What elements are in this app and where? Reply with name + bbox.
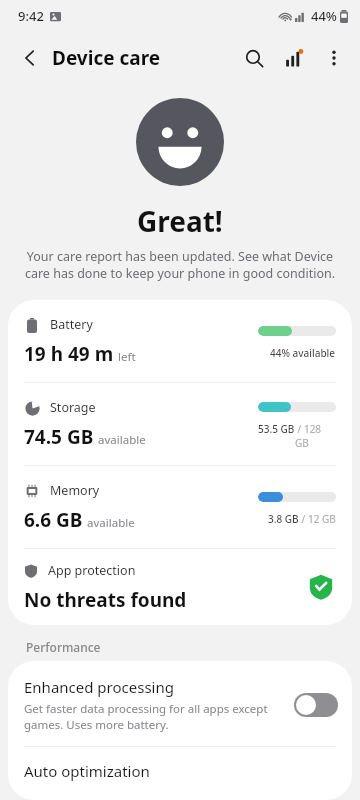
staticText: 9:42 [18,7,44,25]
button[interactable]: Auto optimization [8,747,352,800]
staticText: / 128 GB [295,422,336,450]
button[interactable]: Enhanced processing toggle [294,693,338,717]
staticText: App protection [48,562,136,579]
button[interactable]: Search [234,38,274,78]
staticText: Get faster data processing for all apps … [24,701,284,732]
button[interactable]: Enhanced processing [8,661,352,746]
staticText: Performance [26,639,101,655]
button[interactable]: App protection [8,549,352,625]
staticText: Battery [50,316,93,333]
staticText: 44% [311,7,337,25]
staticText: 3.8 GB [268,512,299,526]
staticText: 53.5 GB [258,422,295,436]
staticText: Auto optimization [24,761,150,781]
staticText: No threats found [24,587,187,613]
staticText: Storage [50,399,96,416]
staticText: Device care [52,45,161,71]
button[interactable]: Storage [8,383,352,465]
staticText: 19 h 49 m [24,341,114,367]
staticText: Enhanced processing [24,677,174,697]
staticText: / 12 GB [299,512,336,526]
button[interactable]: More options [314,38,354,78]
staticText: available [87,515,135,531]
button[interactable]: Battery [8,300,352,382]
staticText: 74.5 GB [24,424,94,450]
staticText: 44% available [270,346,336,360]
staticText: Your care report has been updated. See w… [22,248,338,282]
staticText: Memory [50,482,100,499]
button[interactable]: Back [8,36,52,80]
button[interactable]: Memory [8,466,352,548]
staticText: available [98,432,146,448]
staticText: 6.6 GB [24,507,83,533]
staticText: left [118,349,136,365]
button[interactable]: Statistics [274,38,314,78]
staticText: Great! [137,202,223,240]
